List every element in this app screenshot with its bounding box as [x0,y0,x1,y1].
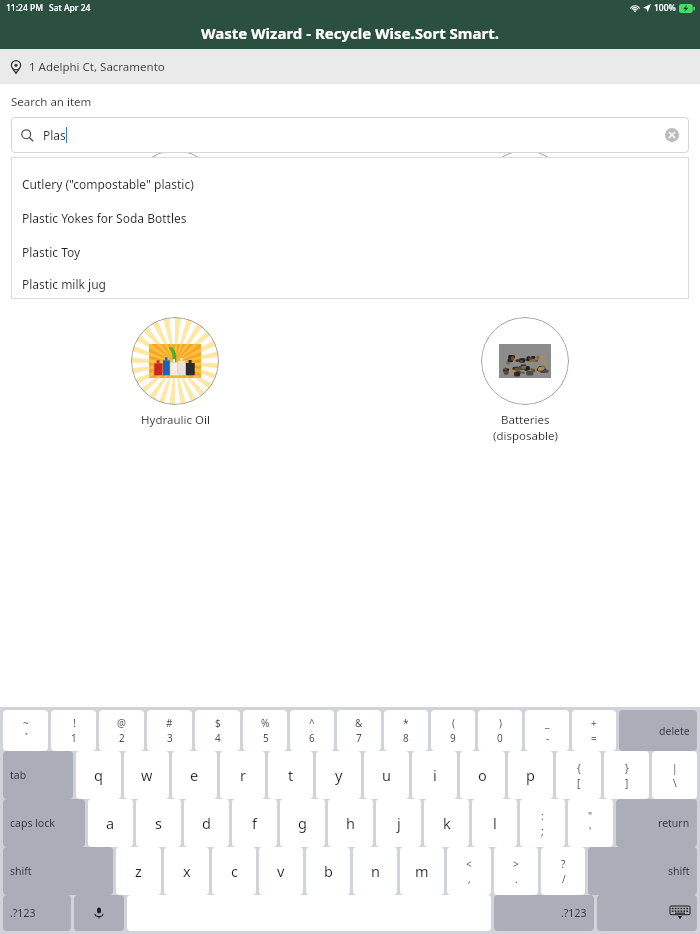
staticText: | [672,761,678,775]
button[interactable]: Hydraulic Oil [127,313,223,432]
button[interactable]: @ [99,710,144,751]
staticText: ) [499,716,502,730]
button[interactable]: : [520,799,565,847]
button[interactable]: e [172,751,217,799]
staticText: s [155,813,162,833]
button[interactable]: k [424,799,469,847]
staticText: w [141,765,153,785]
button[interactable]: u [364,751,409,799]
button[interactable]: < [447,847,491,895]
staticText: 6 [309,731,315,745]
button[interactable]: Plastic Toy [11,235,689,269]
staticText: > [513,857,519,871]
staticText: - [546,731,550,745]
staticText: x [183,861,191,881]
button[interactable]: j [376,799,421,847]
staticText: m [415,861,429,881]
button[interactable]: > [494,847,538,895]
button[interactable]: & [337,710,381,751]
staticText: 8 [403,731,409,745]
staticText: : [541,809,544,823]
staticText: .?123 [10,906,36,920]
staticText: ^ [309,716,315,730]
staticText: Batteries [501,412,550,428]
button[interactable]: ! [51,710,96,751]
button[interactable]: { [556,751,601,799]
button[interactable]: ^ [290,710,334,751]
button[interactable]: Batteries [477,313,573,448]
staticText: / [562,872,566,886]
button[interactable]: l [472,799,517,847]
button[interactable]: x [164,847,209,895]
staticText: ? [561,857,566,871]
button[interactable]: Plas [11,117,689,153]
button[interactable]: + [572,710,616,751]
button[interactable]: .?123 [494,895,594,931]
button[interactable]: return [616,799,697,847]
button[interactable]: ~ [3,710,48,751]
button[interactable]: g [280,799,325,847]
button[interactable]: Clear search [665,128,679,142]
staticText: $ [215,716,221,730]
button[interactable]: h [328,799,373,847]
staticText: Cutlery ("compostable" plastic) [22,176,194,192]
button[interactable]: | [652,751,697,799]
button[interactable]: $ [195,710,240,751]
button[interactable]: shift [3,847,113,895]
button[interactable]: p [508,751,553,799]
staticText: , [468,872,471,886]
button[interactable]: Hide keyboard [597,895,697,931]
button[interactable]: tab [3,751,73,799]
staticText: Plastic milk jug [22,276,106,292]
staticText: 1 [71,731,77,745]
button[interactable]: i [412,751,457,799]
button[interactable]: o [460,751,505,799]
button[interactable]: z [116,847,161,895]
button[interactable]: # [147,710,192,751]
button[interactable]: t [268,751,313,799]
button[interactable]: b [306,847,350,895]
button[interactable]: Voice input [74,895,124,931]
staticText: .?123 [561,906,587,920]
button[interactable]: % [243,710,287,751]
button[interactable]: Cutlery ("compostable" plastic) [11,167,689,201]
button[interactable]: a [88,799,133,847]
staticText: y [335,765,343,785]
staticText: v [277,861,285,881]
button[interactable]: caps lock [3,799,85,847]
button[interactable]: Plastic milk jug [11,269,689,299]
button[interactable]: ? [541,847,585,895]
staticText: Waste Wizard - Recycle Wise.Sort Smart. [201,23,499,43]
button[interactable]: " [568,799,613,847]
button[interactable]: r [220,751,265,799]
button[interactable]: n [353,847,397,895]
button[interactable]: f [232,799,277,847]
button[interactable]: v [259,847,303,895]
button[interactable]: s [136,799,181,847]
staticText: 3 [167,731,173,745]
button[interactable]: q [76,751,121,799]
button[interactable]: m [400,847,444,895]
button[interactable]: y [316,751,361,799]
button[interactable]: ) [478,710,522,751]
staticText: u [382,765,391,785]
button[interactable]: delete [619,710,697,751]
button[interactable]: w [124,751,169,799]
button[interactable]: * [384,710,428,751]
button[interactable]: .?123 [3,895,71,931]
button[interactable]: ( [431,710,475,751]
button[interactable]: 1 Adelphi Ct, Sacramento [0,49,700,84]
button[interactable]: _ [525,710,569,751]
button[interactable]: d [184,799,229,847]
button[interactable]: shift [588,847,697,895]
button[interactable]: Plastic Yokes for Soda Bottles [11,201,689,235]
staticText: ' [589,824,592,838]
button[interactable]: Mattress [477,146,573,265]
button[interactable]: Furniture [127,146,223,265]
staticText: & [355,716,363,730]
button[interactable]: } [604,751,649,799]
staticText: = [591,731,597,745]
button[interactable]: c [212,847,256,895]
